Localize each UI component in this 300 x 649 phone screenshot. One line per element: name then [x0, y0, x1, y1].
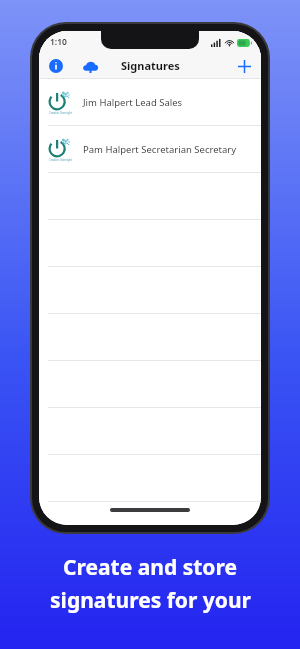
button[interactable]: Add signature: [233, 55, 255, 77]
staticText: Creative Overnight: [49, 111, 72, 115]
staticText: 1:10: [50, 36, 67, 48]
staticText: Pam Halpert Secretarian Secretary: [83, 143, 237, 156]
staticText: Creative Overnight: [49, 158, 72, 162]
staticText: signatures for your: [50, 586, 251, 615]
button[interactable]: Creative Overnight: [39, 79, 261, 126]
staticText: Create and store: [63, 553, 237, 582]
staticText: Signatures: [121, 58, 180, 73]
button[interactable]: Info: [46, 56, 66, 76]
button[interactable]: Creative Overnight: [39, 126, 261, 173]
staticText: Jim Halpert Lead Sales: [83, 96, 183, 109]
button[interactable]: Upload to cloud: [79, 55, 101, 77]
